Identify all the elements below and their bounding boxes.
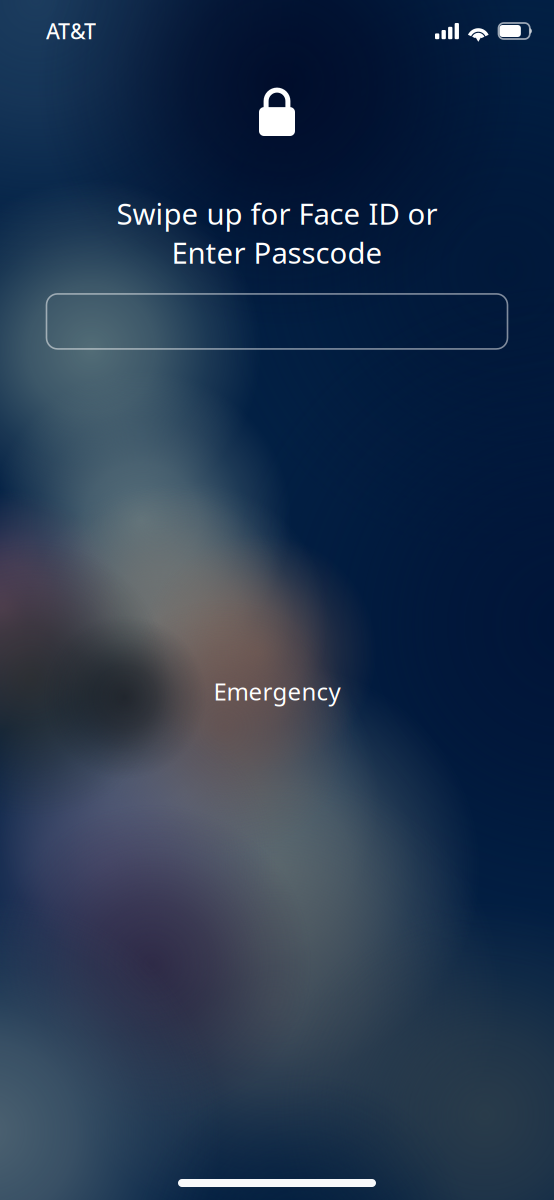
- button[interactable]: [46, 294, 507, 349]
- staticText: Swipe up for Face ID or: [116, 194, 437, 233]
- staticText: Enter Passcode: [171, 233, 382, 272]
- staticText: AT&T: [46, 17, 96, 45]
- staticText: Emergency: [213, 675, 340, 707]
- button[interactable]: Emergency: [203, 665, 350, 717]
